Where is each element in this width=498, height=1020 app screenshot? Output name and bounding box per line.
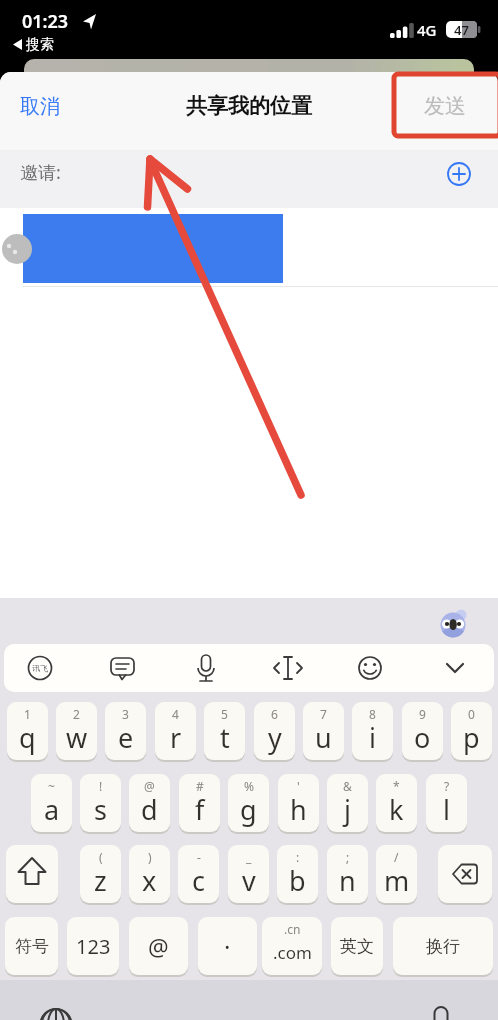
staticText: : [296,849,300,865]
staticText: s [94,791,107,828]
button[interactable] [178,845,219,903]
button[interactable] [331,917,383,975]
button[interactable] [438,845,492,903]
staticText: 符号 [15,936,49,957]
button[interactable] [179,774,220,832]
staticText: ! [99,778,103,794]
button[interactable] [277,845,318,903]
button[interactable]: 取消 [20,92,80,120]
button[interactable] [5,917,58,975]
button[interactable] [376,845,417,903]
staticText: 共享我的位置 [186,93,312,119]
button[interactable]: 发送 [424,92,470,120]
staticText: q [19,719,36,756]
staticText: 取消 [20,94,60,119]
staticText: a [44,791,60,828]
staticText: · [224,930,231,963]
staticText: e [118,719,134,756]
staticText: 1 [24,706,31,722]
staticText: % [244,778,254,794]
button[interactable] [7,702,48,760]
staticText: f [195,791,205,828]
staticText: 讯飞 [32,663,48,673]
button[interactable] [254,702,295,760]
staticText: x [142,862,157,899]
staticText: 3 [122,706,129,722]
staticText: i [369,719,376,756]
staticText: ) [148,849,152,865]
staticText: & [343,778,352,794]
staticText: 发送 [424,93,466,119]
staticText: h [290,791,307,828]
staticText: w [66,719,88,756]
button[interactable] [56,702,97,760]
button[interactable] [435,648,475,688]
staticText: 4 [172,706,179,722]
staticText: o [414,719,431,756]
staticText: 6 [271,706,278,722]
staticText: # [196,778,204,794]
button[interactable] [268,648,308,688]
button[interactable] [105,702,146,760]
staticText: 搜索 [26,36,54,54]
button[interactable] [402,702,443,760]
staticText: ' [297,778,300,794]
button[interactable] [67,917,119,975]
staticText: 123 [76,933,111,960]
button[interactable] [376,774,417,832]
button[interactable] [204,702,245,760]
staticText: 4G [417,20,437,40]
staticText: 邀请: [20,160,61,185]
button[interactable] [102,648,142,688]
button[interactable] [23,214,283,283]
button[interactable] [451,702,492,760]
button[interactable] [303,702,344,760]
button[interactable] [20,648,60,688]
staticText: ( [99,849,103,865]
staticText: n [339,862,356,899]
button[interactable] [129,845,170,903]
button[interactable] [38,998,74,1020]
staticText: b [289,862,306,899]
button[interactable] [262,917,322,975]
button[interactable] [444,158,476,190]
staticText: ~ [48,778,55,794]
staticText: t [220,719,230,756]
button[interactable] [198,917,257,975]
staticText: d [141,791,158,828]
button[interactable] [428,998,454,1020]
staticText: 5 [221,706,228,722]
button[interactable] [80,845,121,903]
button[interactable] [129,774,170,832]
button[interactable] [350,648,390,688]
button[interactable] [228,774,269,832]
staticText: .com [273,941,312,964]
button[interactable] [393,917,493,975]
button[interactable] [6,845,58,903]
staticText: k [389,791,404,828]
staticText: 7 [320,706,327,722]
button[interactable] [352,702,393,760]
staticText: l [443,791,450,828]
staticText: 8 [369,706,376,722]
button[interactable] [327,774,368,832]
button[interactable] [155,702,196,760]
staticText: c [192,862,205,899]
staticText: z [94,862,107,899]
button[interactable] [278,774,319,832]
staticText: y [268,719,282,756]
button[interactable] [129,917,188,975]
button[interactable] [426,774,467,832]
button[interactable] [80,774,121,832]
staticText: 01:23 [22,9,69,33]
staticText: 47 [454,21,469,38]
button[interactable] [31,774,72,832]
staticText: / [394,849,399,865]
staticText: ; [346,849,350,865]
button[interactable] [327,845,368,903]
button[interactable] [228,845,269,903]
button[interactable] [186,648,226,688]
staticText: 换行 [426,936,460,957]
staticText: - [197,849,201,865]
staticText: 英文 [340,936,374,957]
